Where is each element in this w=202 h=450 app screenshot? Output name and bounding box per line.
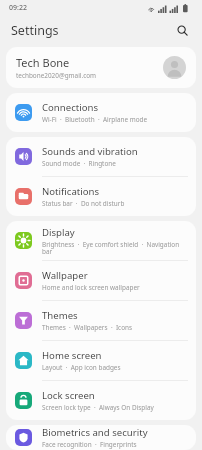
button[interactable]: Themes (6, 301, 196, 341)
staticText: Tech Bone (16, 55, 70, 70)
button[interactable]: Biometrics and security (6, 425, 196, 450)
staticText: Wi-Fi · Bluetooth · Airplane mode (42, 115, 148, 124)
staticText: Notifications (42, 185, 100, 198)
staticText: Display (42, 226, 75, 239)
staticText: Home screen (42, 349, 102, 362)
staticText: Lock screen (42, 389, 95, 402)
button[interactable]: Lock screen (6, 381, 196, 420)
staticText: Sound mode · Ringtone (42, 159, 116, 168)
button[interactable]: Display (6, 221, 196, 261)
button[interactable]: Notifications (6, 177, 196, 216)
staticText: Status bar · Do not disturb (42, 199, 125, 208)
staticText: 09:22 (9, 3, 27, 13)
staticText: techbone2020@gmail.com (16, 71, 97, 80)
staticText: Themes · Wallpapers · Icons (42, 323, 133, 332)
staticText: Settings (11, 22, 59, 39)
staticText: Layout · App icon badges (42, 363, 121, 372)
staticText: Brightness · Eye comfort shield · Naviga… (42, 240, 184, 256)
staticText: Themes (42, 309, 78, 322)
button[interactable]: Sounds and vibration (6, 137, 196, 177)
staticText: Biometrics and security (42, 426, 148, 439)
button[interactable]: Wallpaper (6, 261, 196, 301)
staticText: Connections (42, 101, 99, 114)
staticText: Wallpaper (42, 269, 88, 282)
staticText: Screen lock type · Always On Display (42, 403, 154, 412)
staticText: Home and lock screen wallpaper (42, 283, 140, 292)
staticText: Face recognition · Fingerprints (42, 440, 137, 449)
button[interactable]: Search (173, 21, 191, 39)
button[interactable]: Tech Bone (6, 47, 196, 88)
button[interactable]: Home screen (6, 341, 196, 381)
button[interactable]: Connections (6, 93, 196, 132)
staticText: Sounds and vibration (42, 145, 138, 158)
